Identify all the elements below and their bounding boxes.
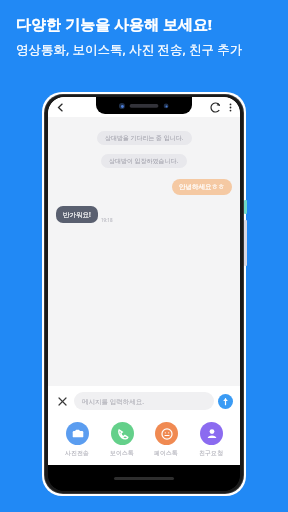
staticText: 다양한 기능을 사용해 보세요!: [16, 14, 212, 34]
staticText: 보이스톡: [110, 449, 134, 457]
button[interactable]: 메시지를 입력하세요.: [74, 392, 214, 410]
staticText: 메시지를 입력하세요.: [82, 397, 144, 406]
button[interactable]: 친구요청: [195, 422, 227, 457]
staticText: 친구요청: [199, 449, 223, 457]
button[interactable]: 사진전송: [61, 422, 93, 457]
button[interactable]: 보이스톡: [106, 422, 138, 457]
button[interactable]: Close: [55, 394, 69, 408]
button[interactable]: Refresh: [207, 99, 223, 115]
staticText: 사진전송: [65, 449, 89, 457]
button[interactable]: Send: [218, 394, 233, 409]
button[interactable]: Back: [52, 99, 68, 115]
staticText: 반가워요!: [63, 210, 91, 219]
button[interactable]: More options: [223, 100, 237, 114]
staticText: 페이스톡: [154, 449, 178, 457]
staticText: 영상통화, 보이스톡, 사진 전송, 친구 추가: [16, 41, 243, 58]
button[interactable]: 페이스톡: [150, 422, 182, 457]
staticText: 상대방을 기다리는 중 입니다.: [105, 134, 184, 142]
staticText: 19:18: [101, 217, 113, 223]
staticText: 상대방이 입장하였습니다.: [109, 157, 179, 165]
staticText: 안녕하세요ㅎㅎ: [179, 183, 225, 191]
